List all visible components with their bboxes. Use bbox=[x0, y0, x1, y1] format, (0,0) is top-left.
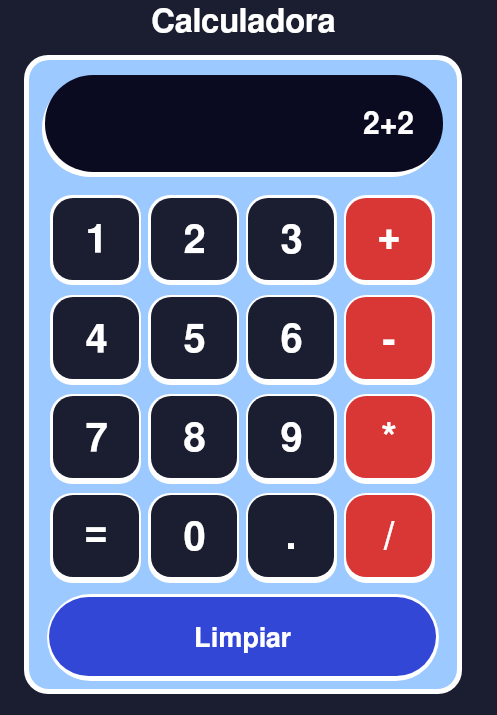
staticText: 7 bbox=[85, 419, 108, 459]
button[interactable]: 2+2 bbox=[45, 75, 443, 172]
button[interactable] bbox=[50, 394, 141, 484]
button[interactable] bbox=[148, 394, 239, 484]
staticText: 4 bbox=[85, 320, 108, 360]
button[interactable] bbox=[50, 493, 141, 583]
staticText: 2 bbox=[183, 221, 206, 261]
button[interactable] bbox=[344, 394, 435, 484]
button[interactable] bbox=[246, 295, 337, 385]
staticText: Calculadora bbox=[151, 6, 336, 39]
staticText: 6 bbox=[280, 320, 303, 360]
button[interactable] bbox=[50, 195, 141, 285]
button[interactable] bbox=[246, 195, 337, 285]
button[interactable] bbox=[246, 394, 337, 484]
button[interactable] bbox=[148, 493, 239, 583]
staticText: = bbox=[84, 512, 108, 552]
button[interactable] bbox=[50, 295, 141, 385]
staticText: 5 bbox=[183, 320, 206, 360]
staticText: 0 bbox=[183, 518, 206, 558]
button[interactable] bbox=[344, 195, 435, 285]
staticText: / bbox=[383, 517, 395, 557]
staticText: - bbox=[382, 321, 396, 361]
staticText: 3 bbox=[280, 221, 303, 261]
staticText: + bbox=[377, 217, 401, 257]
staticText: Limpiar bbox=[194, 625, 292, 652]
staticText: . bbox=[286, 517, 296, 557]
staticText: * bbox=[381, 419, 397, 459]
button[interactable] bbox=[148, 295, 239, 385]
staticText: 9 bbox=[280, 419, 303, 459]
button[interactable] bbox=[47, 594, 439, 681]
button[interactable] bbox=[246, 493, 337, 583]
staticText: 2+2 bbox=[363, 110, 414, 140]
staticText: 1 bbox=[85, 221, 108, 261]
staticText: 8 bbox=[183, 419, 206, 459]
button[interactable] bbox=[344, 493, 435, 583]
button[interactable] bbox=[344, 295, 435, 385]
button[interactable] bbox=[148, 195, 239, 285]
